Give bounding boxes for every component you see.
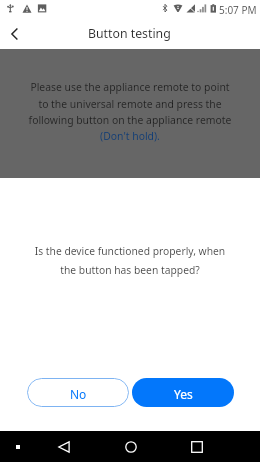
staticText: Button testing: [88, 25, 171, 42]
button[interactable]: Back: [48, 431, 79, 462]
button[interactable]: Back: [0, 18, 30, 48]
button[interactable]: IME switcher: [10, 439, 26, 455]
staticText: Please use the appliance remote to point…: [28, 80, 232, 143]
button[interactable]: Recent apps: [181, 431, 212, 462]
staticText: Yes: [174, 386, 193, 402]
staticText: Is the device functioned properly, when …: [32, 244, 228, 277]
button[interactable]: Home: [115, 431, 146, 462]
button[interactable]: No: [27, 378, 129, 407]
button[interactable]: Yes: [132, 378, 234, 407]
staticText: No: [70, 386, 87, 402]
staticText: 5:07 PM: [219, 3, 257, 17]
